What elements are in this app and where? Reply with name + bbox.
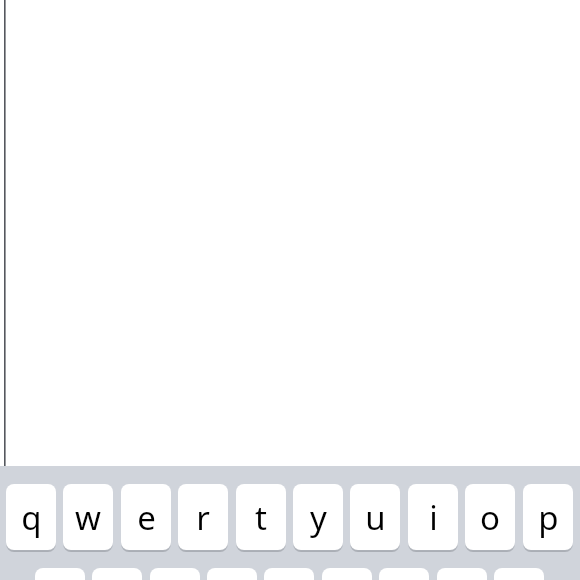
button[interactable]: e bbox=[121, 484, 171, 552]
button[interactable]: a bbox=[35, 568, 85, 580]
button[interactable]: l bbox=[494, 568, 544, 580]
button[interactable] bbox=[0, 0, 580, 466]
button[interactable]: d bbox=[150, 568, 200, 580]
staticText: w bbox=[75, 495, 101, 540]
staticText: q bbox=[21, 495, 42, 540]
button[interactable]: g bbox=[264, 568, 314, 580]
staticText: t bbox=[255, 495, 267, 540]
button[interactable]: y bbox=[293, 484, 343, 552]
staticText: o bbox=[480, 495, 500, 540]
button[interactable]: w bbox=[63, 484, 113, 552]
button[interactable]: f bbox=[207, 568, 257, 580]
button[interactable]: i bbox=[408, 484, 458, 552]
button[interactable]: j bbox=[379, 568, 429, 580]
button[interactable]: h bbox=[322, 568, 372, 580]
staticText: y bbox=[310, 495, 327, 540]
button[interactable]: t bbox=[236, 484, 286, 552]
staticText: p bbox=[538, 495, 559, 540]
staticText: i bbox=[429, 495, 438, 540]
staticText: e bbox=[137, 495, 156, 540]
staticText: r bbox=[196, 495, 210, 540]
button[interactable]: r bbox=[178, 484, 228, 552]
button[interactable]: k bbox=[437, 568, 487, 580]
button[interactable]: s bbox=[92, 568, 142, 580]
button[interactable]: q bbox=[6, 484, 56, 552]
button[interactable]: u bbox=[350, 484, 400, 552]
button[interactable]: o bbox=[465, 484, 515, 552]
staticText: u bbox=[365, 495, 386, 540]
button[interactable]: p bbox=[523, 484, 573, 552]
